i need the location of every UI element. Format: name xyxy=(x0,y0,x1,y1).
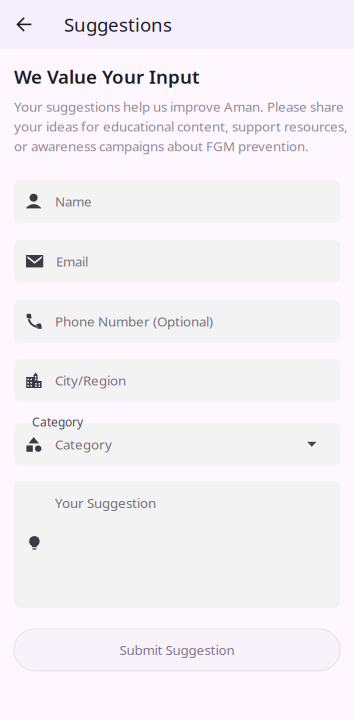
staticText: Suggestions xyxy=(64,12,172,37)
staticText: Category xyxy=(55,436,112,453)
button[interactable]: Category xyxy=(14,423,340,466)
staticText: Name xyxy=(55,193,92,210)
button[interactable]: Back xyxy=(2,2,46,46)
staticText: Submit Suggestion xyxy=(119,641,234,659)
button[interactable]: City/Region xyxy=(14,359,340,402)
staticText: We Value Your Input xyxy=(14,64,200,89)
button[interactable]: Email xyxy=(14,240,340,283)
button[interactable]: Submit Suggestion xyxy=(14,629,340,671)
staticText: Category xyxy=(32,414,83,430)
staticText: City/Region xyxy=(55,372,126,389)
button[interactable]: Phone Number (Optional) xyxy=(14,300,340,343)
button[interactable]: Name xyxy=(14,180,340,223)
staticText: Your Suggestion xyxy=(55,494,156,512)
staticText: Your suggestions help us improve Aman. P… xyxy=(14,98,348,155)
button[interactable]: Your Suggestion xyxy=(14,481,340,608)
staticText: Email xyxy=(56,253,88,270)
staticText: Phone Number (Optional) xyxy=(55,313,213,330)
